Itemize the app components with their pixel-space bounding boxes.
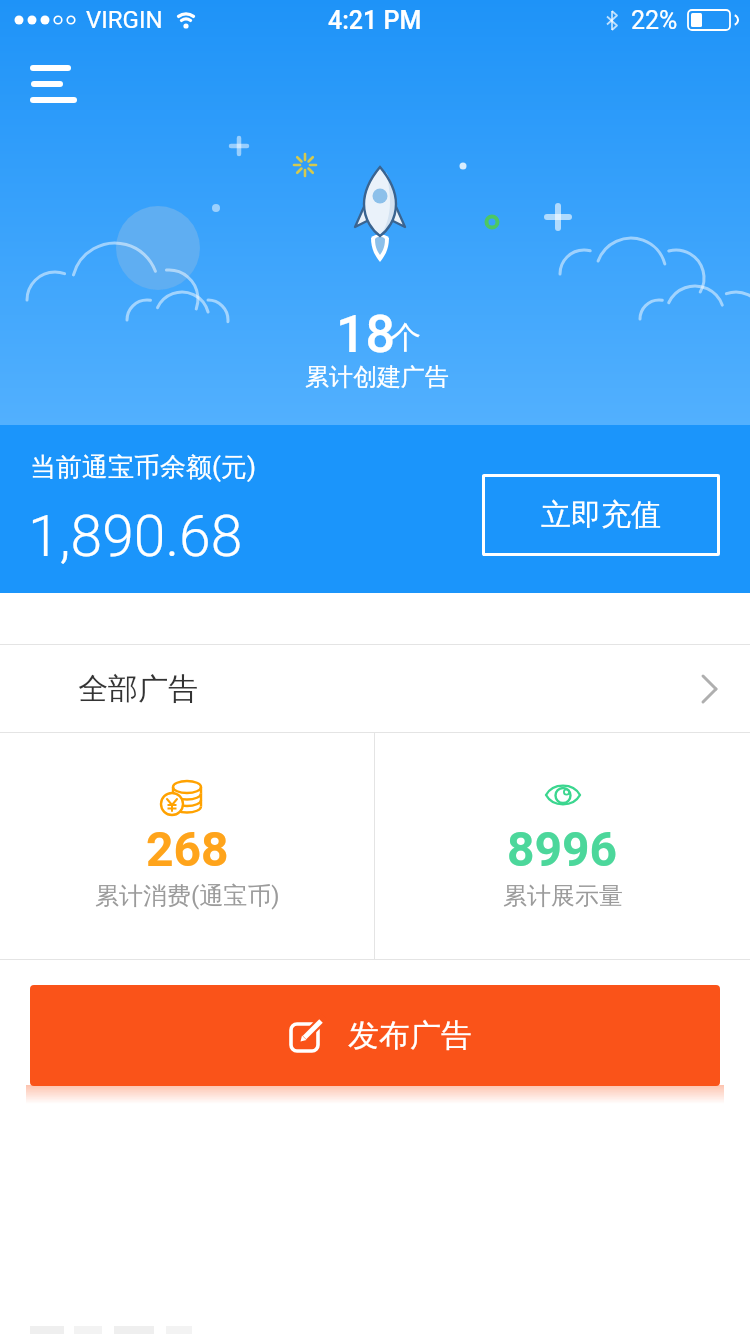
staticText: 1,890.68 (28, 503, 243, 570)
staticText: 22% (631, 6, 678, 35)
staticText: 4:21 PM (328, 6, 422, 35)
staticText: 立即充值 (541, 496, 661, 534)
button[interactable]: 8996 (375, 733, 750, 959)
button[interactable]: 发布广告 (30, 985, 720, 1086)
button[interactable] (30, 62, 78, 110)
button[interactable]: 全部广告 (0, 645, 750, 732)
staticText: 发布广告 (348, 1016, 472, 1055)
staticText: 全部广告 (78, 670, 198, 708)
staticText: 累计展示量 (503, 881, 623, 911)
staticText: 8996 (507, 821, 618, 877)
staticText: 累计创建广告 (305, 362, 449, 392)
button[interactable]: 立即充值 (482, 474, 720, 556)
staticText: 当前通宝币余额(元) (30, 451, 256, 484)
staticText: 个 (390, 318, 421, 357)
staticText: 累计消费(通宝币) (95, 881, 280, 911)
staticText: 268 (146, 821, 229, 877)
staticText: VIRGIN (86, 6, 163, 34)
staticText: 18 (336, 304, 396, 365)
button[interactable]: 268 (0, 733, 374, 959)
